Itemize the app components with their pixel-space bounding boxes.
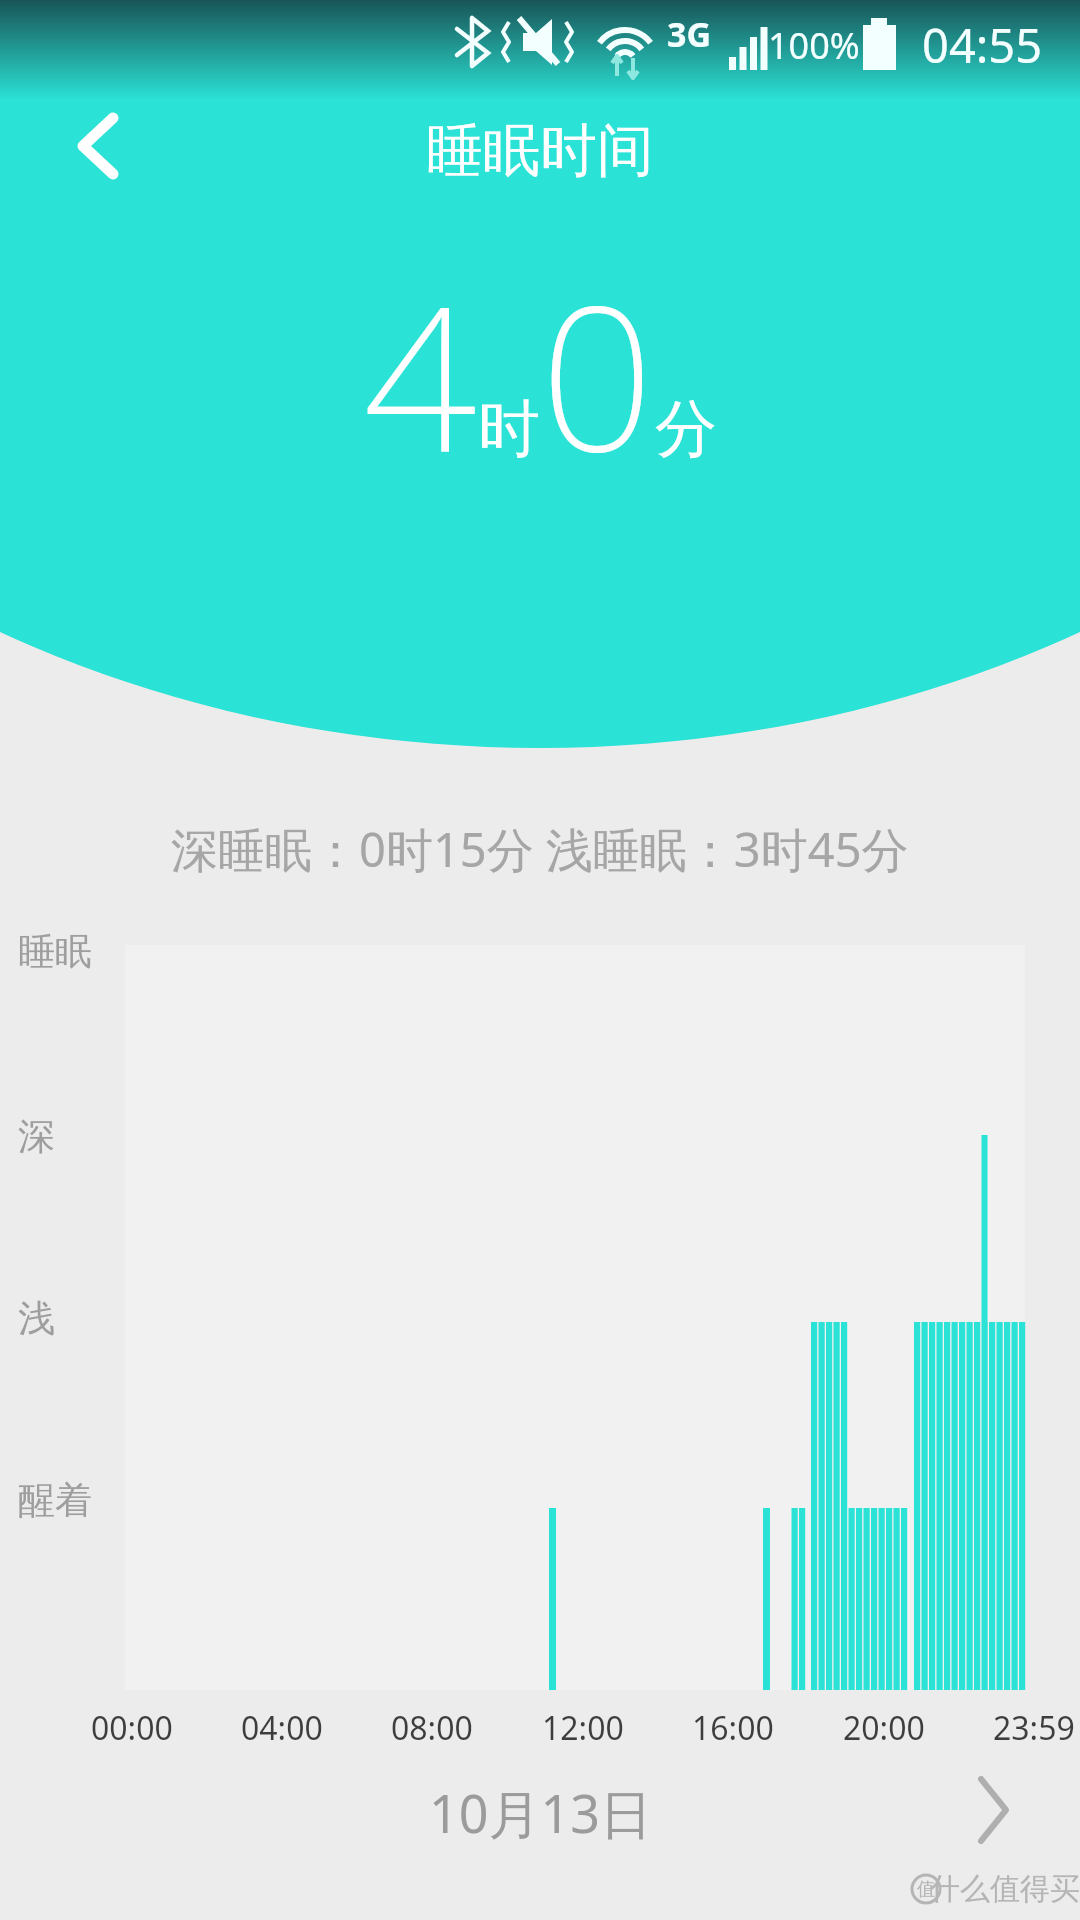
staticText: 10月13日 <box>429 1777 652 1848</box>
staticText: 00:00 <box>91 1706 173 1750</box>
staticText: 20:00 <box>843 1706 925 1750</box>
staticText: 浅 <box>18 1295 55 1342</box>
staticText: 值 <box>917 1878 935 1901</box>
staticText: 100% <box>768 21 860 70</box>
staticText: 16:00 <box>692 1706 774 1750</box>
staticText: 4 <box>363 237 478 509</box>
staticText: 什么值得买 <box>930 1870 1080 1908</box>
staticText: 分 <box>655 390 717 468</box>
staticText: 0 <box>540 237 655 509</box>
staticText: 04:00 <box>241 1706 323 1750</box>
staticText: 睡眠时间 <box>426 115 654 187</box>
staticText: 04:55 <box>922 13 1043 77</box>
staticText: 12:00 <box>542 1706 624 1750</box>
button[interactable] <box>930 1760 1040 1860</box>
staticText: 3G <box>667 11 712 57</box>
staticText: 深 <box>18 1113 55 1160</box>
staticText: 深睡眠：0时15分 浅睡眠：3时45分 <box>171 817 909 881</box>
staticText: 时 <box>478 390 540 468</box>
button[interactable] <box>40 100 150 195</box>
staticText: 08:00 <box>391 1706 473 1750</box>
staticText: 23:59 <box>993 1706 1075 1750</box>
staticText: 醒着 <box>18 1477 92 1524</box>
staticText: 睡眠 <box>18 928 92 975</box>
